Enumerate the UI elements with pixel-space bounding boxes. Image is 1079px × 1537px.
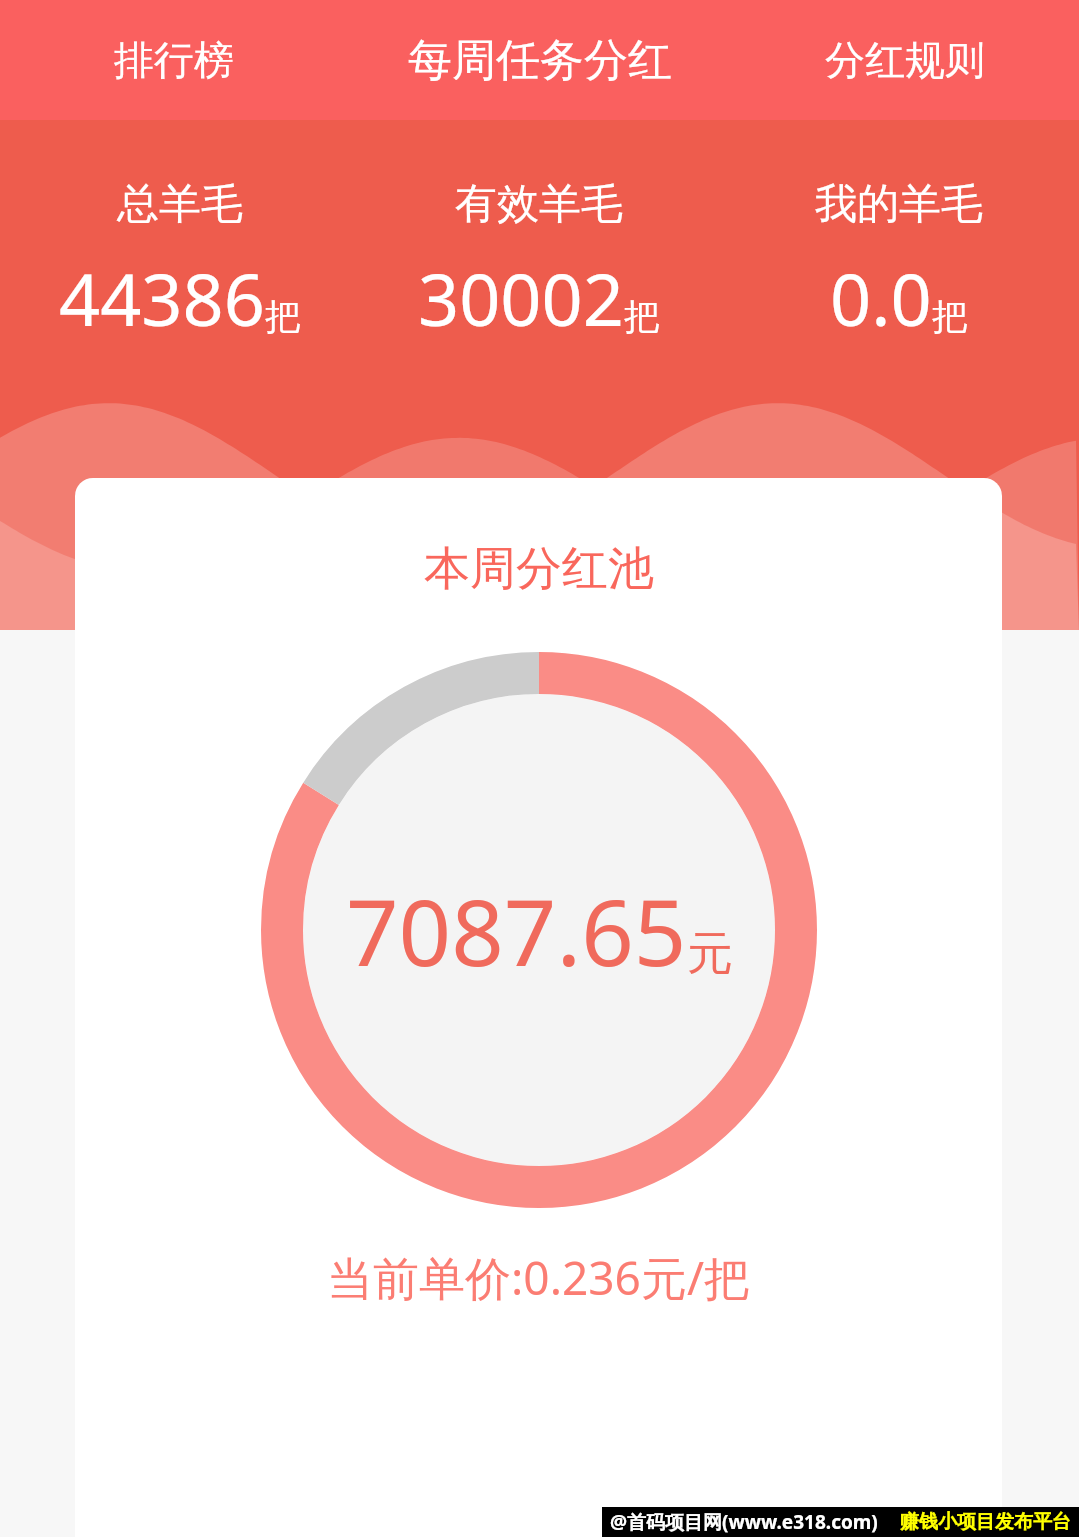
button[interactable]: 总羊毛: [0, 178, 359, 347]
staticText: 7087.65: [346, 868, 687, 993]
staticText: 把: [624, 294, 660, 339]
button[interactable]: 每周任务分红: [348, 0, 731, 120]
staticText: 赚钱小项目发布平台: [900, 1510, 1071, 1534]
button[interactable]: 排行榜: [0, 0, 348, 120]
staticText: 44386: [59, 249, 265, 347]
staticText: 排行榜: [114, 35, 234, 85]
staticText: 分红规则: [825, 35, 985, 85]
staticText: 总羊毛: [117, 178, 243, 231]
staticText: 30002: [418, 249, 624, 347]
button[interactable]: 有效羊毛: [359, 178, 719, 347]
staticText: 元: [687, 925, 733, 983]
staticText: 把: [932, 294, 968, 339]
button[interactable]: 分红规则: [731, 0, 1079, 120]
staticText: @首码项目网(www.e318.com): [610, 1509, 878, 1535]
staticText: 把: [265, 294, 301, 339]
staticText: 0.0: [830, 249, 932, 347]
button[interactable]: 我的羊毛: [719, 178, 1079, 347]
staticText: 本周分红池: [424, 540, 654, 598]
staticText: 当前单价:0.236元/把: [327, 1246, 751, 1309]
staticText: 每周任务分红: [408, 33, 672, 88]
staticText: 有效羊毛: [455, 178, 623, 231]
staticText: 我的羊毛: [815, 178, 983, 231]
